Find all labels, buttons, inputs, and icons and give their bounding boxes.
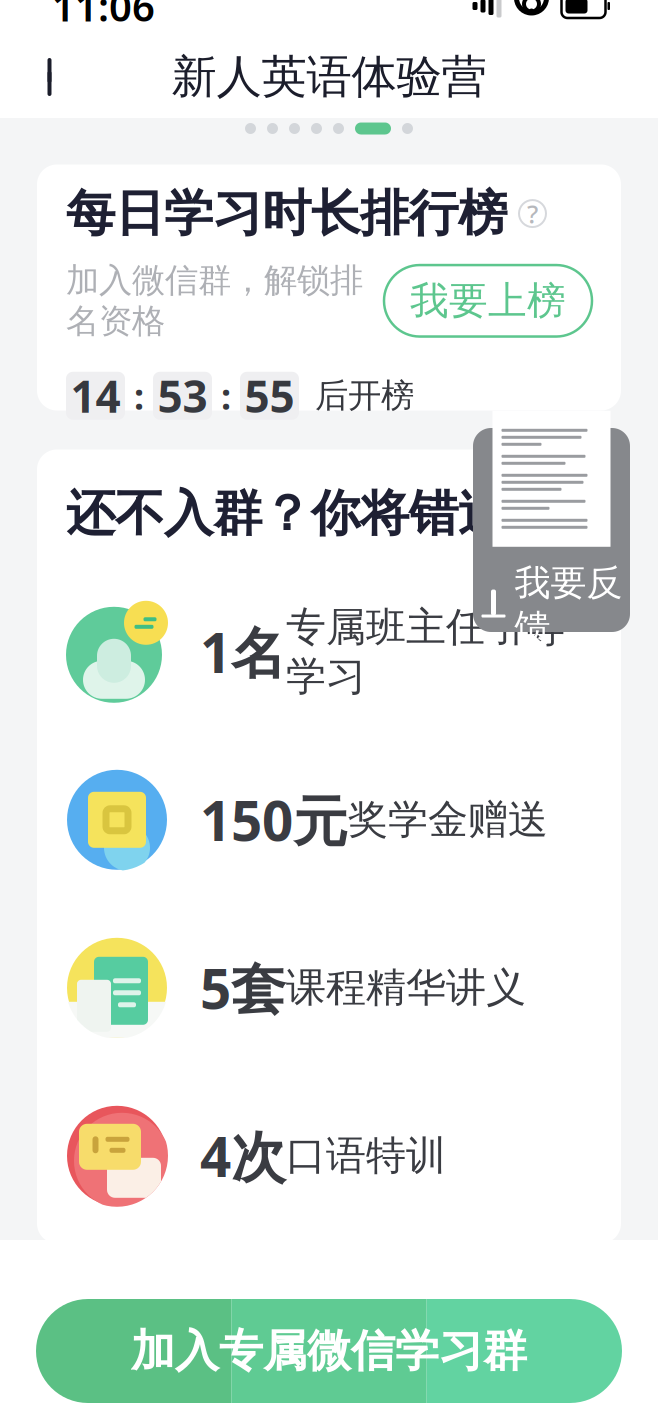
staticText: 奖学金赠送 [348,795,548,844]
staticText: : [134,372,144,420]
staticText: 我要上榜 [410,277,566,325]
staticText: 后开榜 [315,375,414,416]
button[interactable]: 我要上榜 [384,265,592,337]
staticText: 我要反馈 [514,561,622,649]
staticText: 新人英语体验营 [171,49,486,105]
staticText: 1名 [200,615,286,688]
button[interactable]: 加入专属微信学习群 [36,1299,622,1403]
button[interactable]: Help [519,200,546,227]
staticText: ? [527,197,538,230]
staticText: 11:06 [52,0,155,32]
button[interactable]: 我要反馈 [473,428,630,632]
staticText: 专属班主任引导学习 [286,603,566,701]
button[interactable]: Back [22,45,86,109]
staticText: 150元 [200,783,348,856]
staticText: 4次 [200,1119,286,1192]
staticText: 5套 [200,951,286,1024]
staticText: : [221,372,231,420]
staticText: 加入专属微信学习群 [131,1324,527,1378]
staticText: 53 [157,366,207,425]
staticText: 14 [70,366,120,425]
staticText: 加入微信群，解锁排名资格 [66,260,363,342]
staticText: 口语特训 [286,1131,446,1180]
staticText: 55 [244,366,294,425]
staticText: 课程精华讲义 [286,963,526,1012]
staticText: 还不入群？你将错过 [66,483,507,544]
staticText: 每日学习时长排行榜 [66,183,507,244]
